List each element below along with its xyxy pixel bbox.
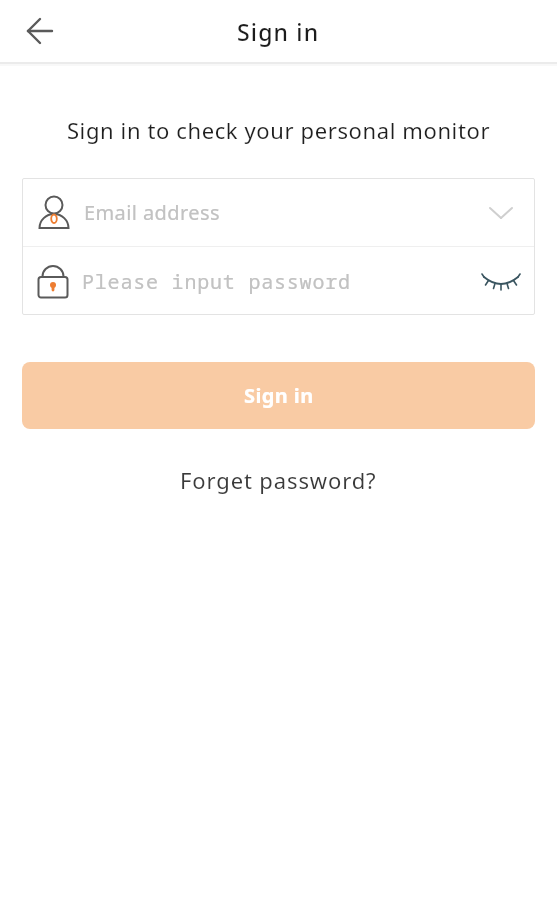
staticText: Sign in bbox=[244, 382, 314, 409]
button[interactable] bbox=[0, 0, 68, 62]
staticText: Forget password? bbox=[180, 465, 377, 495]
staticText: Email address bbox=[84, 199, 489, 226]
staticText: Sign in bbox=[237, 16, 320, 47]
staticText: Please input password bbox=[82, 268, 482, 295]
button[interactable]: Sign in bbox=[22, 362, 535, 429]
button[interactable]: Email address bbox=[22, 178, 535, 246]
button[interactable]: Forget password? bbox=[174, 459, 383, 501]
staticText: Sign in to check your personal monitor bbox=[0, 115, 557, 145]
button[interactable]: Please input password bbox=[22, 247, 535, 315]
